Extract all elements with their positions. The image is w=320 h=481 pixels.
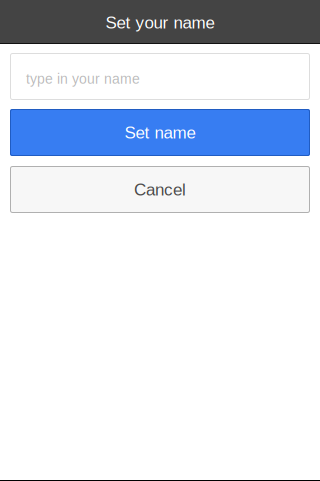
staticText: Set name [124,123,195,142]
staticText: type in your name [26,71,140,87]
staticText: Cancel [134,180,186,199]
button[interactable]: Cancel [10,166,310,213]
button[interactable]: Set name [10,109,310,156]
staticText: Set your name [105,13,214,32]
